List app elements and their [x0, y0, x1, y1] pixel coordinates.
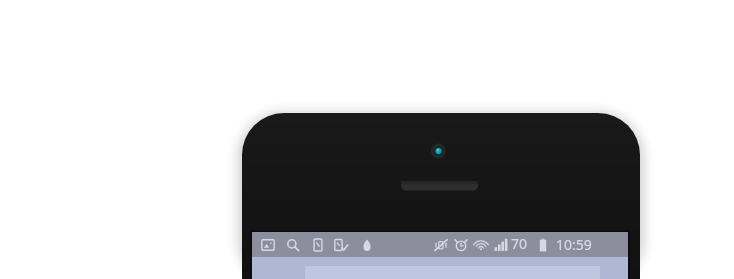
staticText: 10:59: [556, 235, 592, 254]
staticText: 70%: [511, 234, 537, 255]
button[interactable]: System status: [430, 232, 620, 257]
button[interactable]: Notifications: [261, 232, 376, 257]
